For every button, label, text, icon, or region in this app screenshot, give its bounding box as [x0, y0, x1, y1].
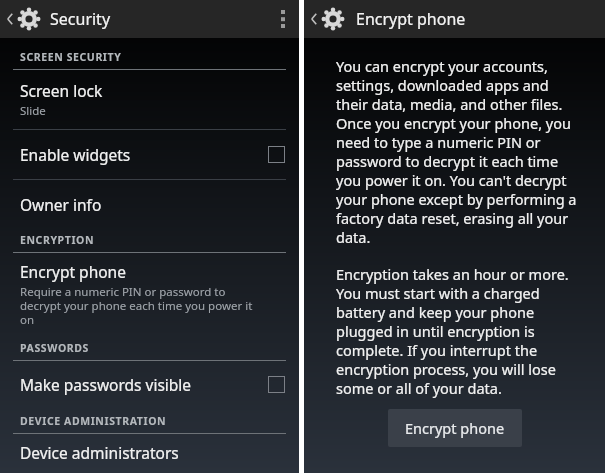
- staticText: PASSWORDS: [20, 341, 89, 355]
- staticText: ENCRYPTION: [20, 233, 95, 247]
- button[interactable]: Navigate up, Security: [0, 0, 119, 38]
- button[interactable]: Screen lock: [0, 70, 299, 129]
- staticText: Make passwords visible: [20, 374, 192, 395]
- staticText: DEVICE ADMINISTRATION: [20, 414, 167, 428]
- staticText: Slide: [20, 103, 46, 119]
- button[interactable]: Owner info: [0, 180, 299, 227]
- button[interactable]: Encrypt phone: [388, 409, 522, 447]
- staticText: Encrypt phone: [405, 418, 505, 438]
- staticText: Owner info: [20, 194, 102, 215]
- button[interactable]: Encrypt phone: [0, 253, 299, 335]
- button[interactable]: Navigate up, Encrypt phone: [304, 0, 474, 38]
- staticText: Security: [50, 8, 111, 30]
- button[interactable]: Enable widgets: [0, 130, 299, 179]
- staticText: Encrypt phone: [356, 8, 466, 30]
- button[interactable]: Device administrators: [0, 434, 299, 473]
- staticText: Screen lock: [20, 80, 103, 101]
- staticText: Enable widgets: [20, 144, 131, 165]
- button[interactable]: More options: [267, 0, 299, 38]
- staticText: Require a numeric PIN or password to dec…: [20, 284, 267, 327]
- staticText: You can encrypt your accounts, settings,…: [336, 56, 583, 248]
- button[interactable]: Make passwords visible: [0, 361, 299, 408]
- staticText: Device administrators: [20, 442, 179, 463]
- staticText: SCREEN SECURITY: [20, 50, 122, 64]
- staticText: Encryption takes an hour or more. You mu…: [336, 264, 583, 399]
- staticText: Encrypt phone: [20, 261, 126, 282]
